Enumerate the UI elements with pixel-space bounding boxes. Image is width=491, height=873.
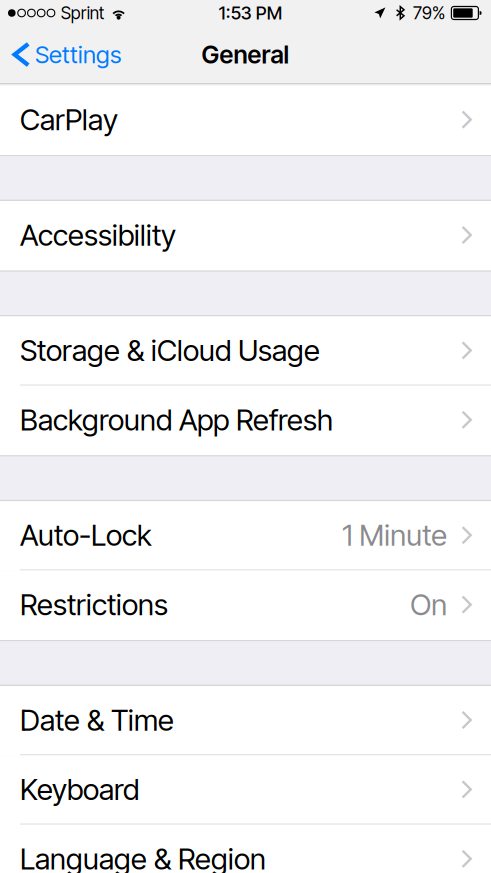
staticText: Restrictions [20,587,168,622]
button[interactable]: Language & Region [0,825,491,873]
button[interactable]: Back to Settings [0,26,131,83]
staticText: Settings [35,40,121,69]
staticText: 79% [413,2,445,23]
button[interactable]: Date & Time [0,686,491,755]
staticText: General [201,40,289,69]
staticText: On [410,587,447,622]
staticText: Language & Region [20,841,266,873]
button[interactable]: Background App Refresh [0,386,491,455]
button[interactable]: Storage & iCloud Usage [0,316,491,386]
staticText: 1:53 PM [219,2,282,24]
staticText: Background App Refresh [20,402,333,438]
button[interactable]: Keyboard [0,755,491,825]
button[interactable]: Restrictions [0,571,491,640]
staticText: 1 Minute [342,517,447,553]
button[interactable]: CarPlay [0,86,491,155]
staticText: CarPlay [20,102,118,137]
staticText: Sprint [61,2,104,23]
staticText: Auto-Lock [20,517,152,553]
staticText: Date & Time [20,702,174,738]
staticText: Storage & iCloud Usage [20,333,320,368]
button[interactable]: Accessibility [0,201,491,270]
staticText: Accessibility [20,217,176,253]
staticText: Keyboard [20,772,139,807]
button[interactable]: Auto-Lock [0,501,491,571]
